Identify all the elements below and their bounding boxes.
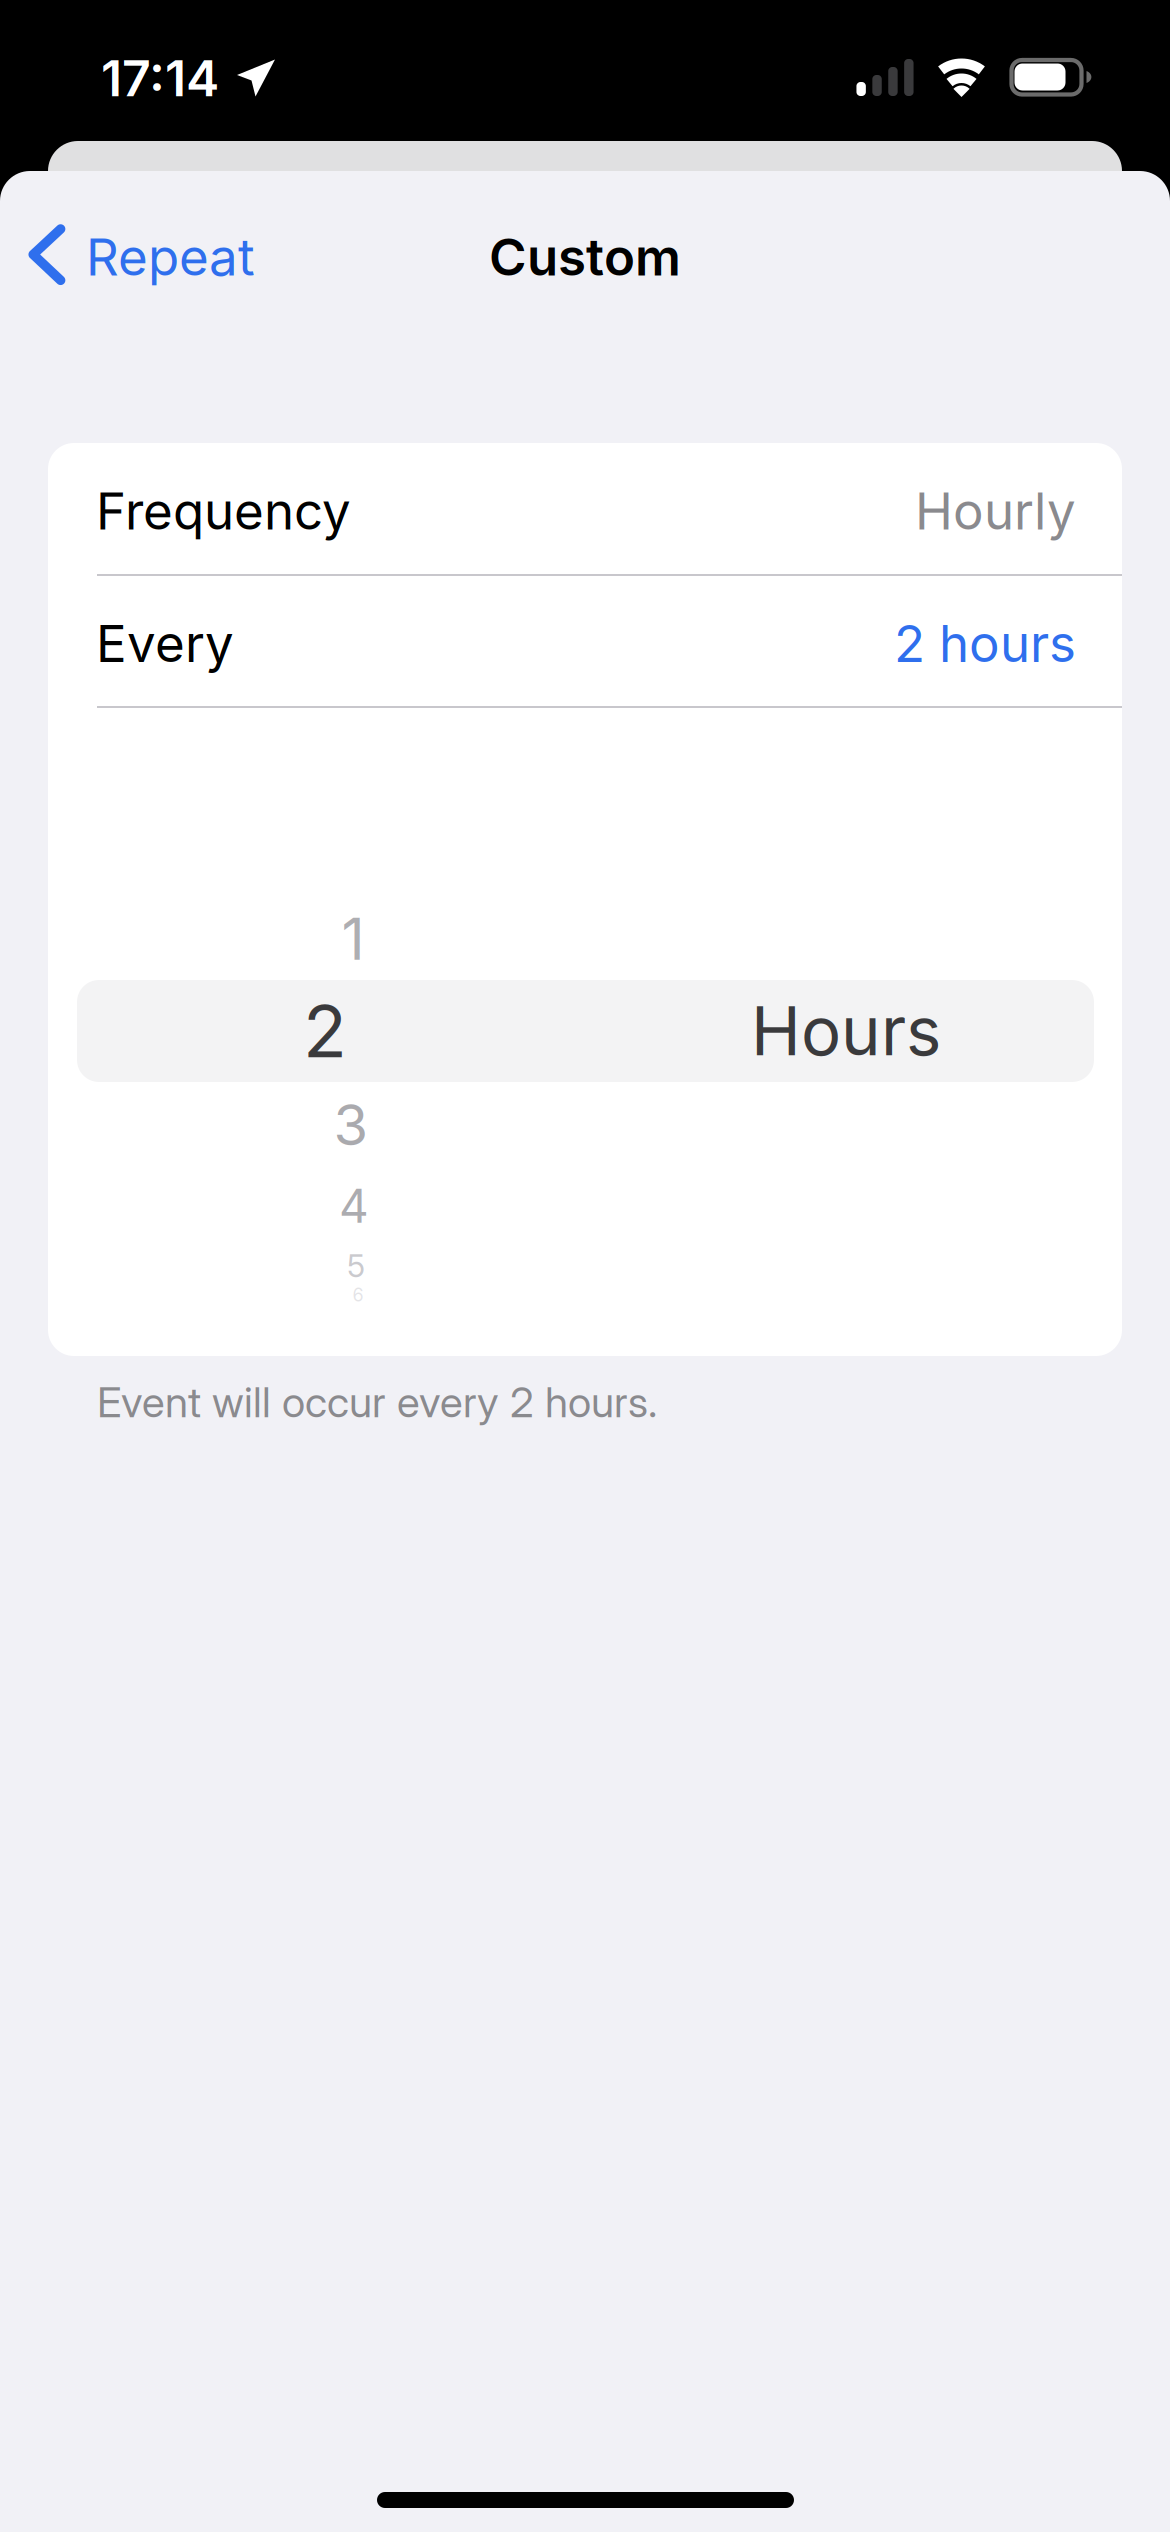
staticText: 4: [339, 1178, 369, 1234]
staticText: 17:14: [101, 48, 219, 108]
button[interactable]: 1: [213, 901, 493, 977]
staticText: 3: [333, 1091, 368, 1159]
staticText: Event will occur every 2 hours.: [97, 1377, 657, 1427]
button[interactable]: 3: [211, 1089, 491, 1161]
staticText: 6: [352, 1284, 363, 1306]
staticText: Hourly: [915, 480, 1076, 542]
button[interactable]: Every: [48, 578, 1122, 709]
staticText: 1: [341, 904, 364, 973]
button[interactable]: Frequency: [48, 446, 1122, 576]
button[interactable]: Repeat: [8, 209, 328, 305]
button[interactable]: Hours: [706, 987, 986, 1075]
button[interactable]: 5: [216, 1245, 496, 1287]
staticText: Frequency: [96, 480, 351, 542]
staticText: 5: [347, 1247, 365, 1285]
staticText: 2 hours: [894, 613, 1076, 674]
staticText: Repeat: [86, 226, 255, 288]
staticText: Every: [96, 613, 234, 674]
button[interactable]: 4: [214, 1177, 494, 1235]
button[interactable]: 2: [185, 987, 465, 1075]
staticText: Hours: [751, 990, 941, 1072]
staticText: Custom: [489, 226, 681, 288]
staticText: 2: [303, 987, 347, 1074]
